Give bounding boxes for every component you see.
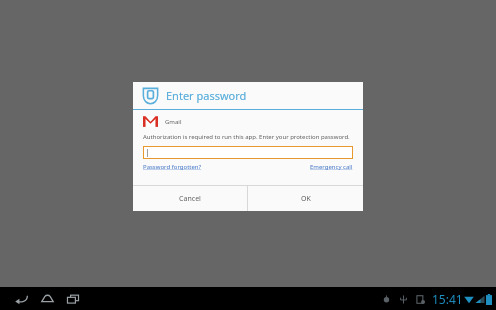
button[interactable]: OK <box>248 186 363 211</box>
button[interactable]: Home <box>34 287 60 310</box>
button[interactable]: Emergency call <box>310 163 353 171</box>
button[interactable]: Recent apps <box>60 287 86 310</box>
button[interactable] <box>143 146 353 159</box>
staticText: Enter password <box>166 88 247 103</box>
button[interactable]: Back <box>8 287 34 310</box>
staticText: 15:41 <box>432 291 463 307</box>
staticText: Gmail <box>165 118 182 126</box>
staticText: Authorization is required to run this ap… <box>143 133 350 141</box>
staticText: Password forgotten? <box>143 163 202 171</box>
staticText: OK <box>301 194 311 204</box>
staticText: Cancel <box>179 194 201 204</box>
button[interactable]: Password forgotten? <box>143 163 202 171</box>
staticText: Emergency call <box>310 163 353 171</box>
button[interactable]: Cancel <box>133 186 247 211</box>
